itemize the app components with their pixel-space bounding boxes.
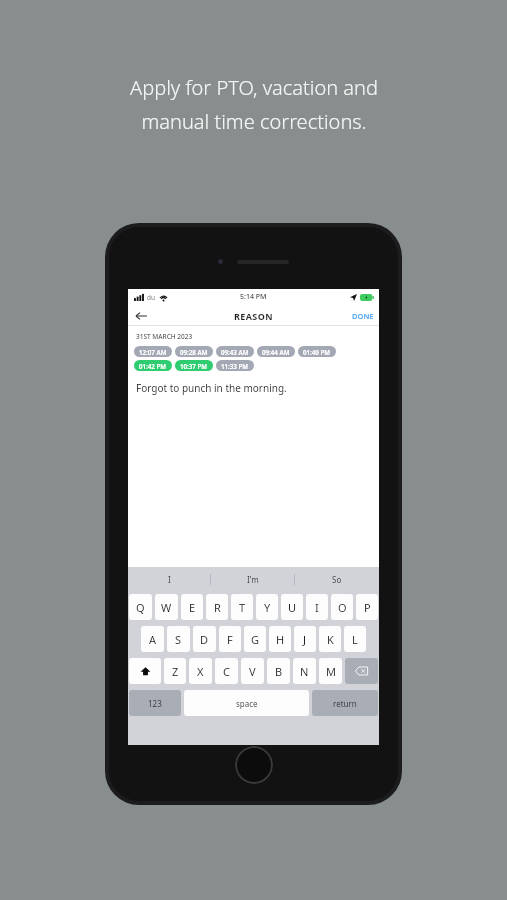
button[interactable]: A (141, 626, 164, 652)
button[interactable]: 11:33 PM (221, 360, 249, 371)
button[interactable]: O (331, 594, 353, 620)
staticText: DONE (352, 311, 374, 321)
button[interactable]: I (306, 594, 328, 620)
button[interactable]: 09:28 AM (180, 346, 208, 357)
button[interactable]: Z (164, 658, 186, 684)
button[interactable]: L (344, 626, 366, 652)
button[interactable]: J (294, 626, 316, 652)
staticText: G (251, 632, 260, 647)
staticText: A (149, 632, 157, 647)
staticText: 09:43 AM (221, 348, 249, 356)
button[interactable]: X (189, 658, 212, 684)
staticText: 09:28 AM (180, 348, 208, 356)
staticText: 01:40 PM (303, 348, 331, 356)
staticText: F (227, 632, 233, 647)
staticText: U (288, 600, 297, 615)
staticText: X (197, 664, 204, 679)
button[interactable]: E (181, 594, 203, 620)
button[interactable]: 10:37 PM (180, 360, 208, 371)
staticText: manual time corrections. (141, 108, 367, 135)
button[interactable]: P (356, 594, 378, 620)
button[interactable]: 123 (129, 690, 181, 716)
button[interactable]: T (231, 594, 253, 620)
button[interactable]: N (293, 658, 316, 684)
staticText: du (147, 293, 156, 302)
button[interactable]: Backspace (345, 658, 378, 684)
staticText: T (239, 600, 246, 615)
staticText: P (364, 600, 371, 615)
staticText: I (168, 574, 171, 585)
button[interactable]: I'm (211, 567, 295, 591)
staticText: H (276, 632, 285, 647)
button[interactable]: space (184, 690, 309, 716)
staticText: I'm (247, 574, 259, 585)
staticText: 12:07 AM (139, 348, 167, 356)
staticText: V (249, 664, 256, 679)
button[interactable]: K (319, 626, 341, 652)
staticText: O (338, 600, 347, 615)
staticText: So (332, 574, 342, 585)
button[interactable]: Shift (129, 658, 161, 684)
button[interactable]: D (193, 626, 216, 652)
staticText: I (315, 600, 319, 615)
button[interactable]: U (281, 594, 303, 620)
button[interactable]: M (319, 658, 342, 684)
button[interactable]: G (244, 626, 266, 652)
button[interactable]: 01:42 PM (139, 360, 167, 371)
button[interactable]: 09:44 AM (262, 346, 290, 357)
button[interactable]: Y (256, 594, 278, 620)
button[interactable]: R (206, 594, 228, 620)
staticText: 10:37 PM (180, 362, 208, 370)
button[interactable]: H (269, 626, 291, 652)
staticText: 31ST MARCH 2023 (136, 332, 193, 341)
button[interactable]: Q (129, 594, 152, 620)
staticText: C (223, 664, 230, 679)
staticText: J (303, 632, 307, 647)
button[interactable]: I (128, 567, 211, 591)
button[interactable]: 09:43 AM (221, 346, 249, 357)
staticText: M (326, 664, 336, 679)
staticText: N (300, 664, 309, 679)
staticText: Y (264, 600, 271, 615)
button[interactable]: 12:07 AM (139, 346, 167, 357)
staticText: 01:42 PM (139, 362, 167, 370)
staticText: E (189, 600, 196, 615)
staticText: D (200, 632, 209, 647)
staticText: space (236, 698, 258, 709)
staticText: B (275, 664, 283, 679)
staticText: 5:14 PM (240, 292, 267, 302)
staticText: 11:33 PM (221, 362, 249, 370)
button[interactable]: C (215, 658, 238, 684)
staticText: REASON (234, 310, 273, 322)
staticText: 09:44 AM (262, 348, 290, 356)
button[interactable]: W (155, 594, 178, 620)
staticText: Z (172, 664, 179, 679)
button[interactable]: S (167, 626, 190, 652)
staticText: W (161, 600, 172, 615)
staticText: return (333, 698, 357, 709)
staticText: Apply for PTO, vacation and (130, 74, 378, 101)
button[interactable]: F (219, 626, 241, 652)
staticText: K (327, 632, 334, 647)
button[interactable]: B (267, 658, 290, 684)
button[interactable]: So (295, 567, 379, 591)
button[interactable]: Back (128, 305, 154, 326)
staticText: Q (136, 600, 145, 615)
staticText: Forgot to punch in the morning. (136, 381, 287, 395)
button[interactable]: DONE (352, 311, 374, 321)
staticText: L (352, 632, 358, 647)
staticText: S (175, 632, 182, 647)
button[interactable]: V (241, 658, 264, 684)
staticText: R (214, 600, 221, 615)
button[interactable]: return (312, 690, 378, 716)
button[interactable]: Home (235, 746, 273, 784)
staticText: 123 (148, 698, 162, 709)
button[interactable]: 01:40 PM (303, 346, 331, 357)
